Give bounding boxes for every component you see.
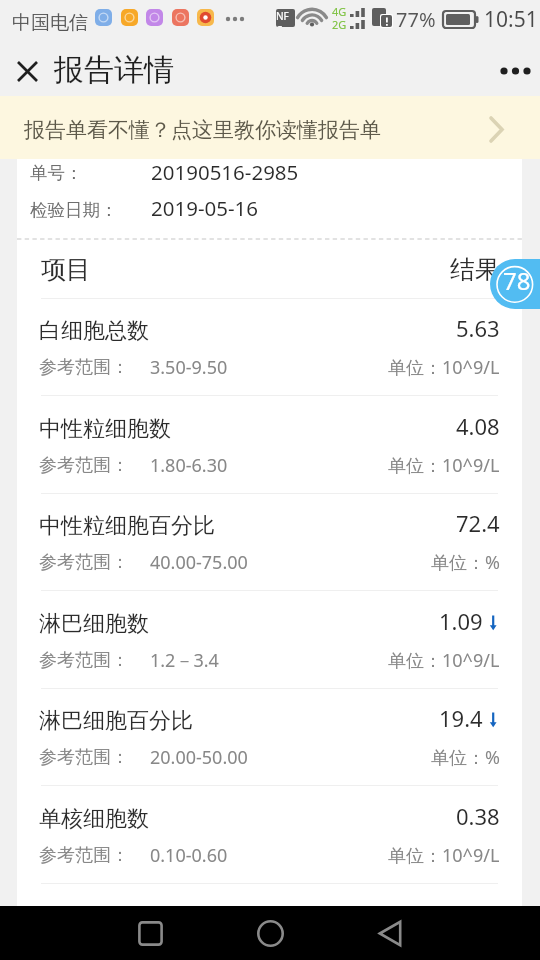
- button[interactable]: 报告单看不懂？点这里教你读懂报告单: [0, 96, 540, 159]
- staticText: 参考范围：: [39, 844, 129, 867]
- staticText: 单号：: [30, 162, 83, 184]
- staticText: 10:51: [484, 5, 538, 34]
- button[interactable]: Home: [230, 906, 310, 960]
- staticText: 2019-05-16: [151, 194, 259, 222]
- button[interactable]: 白细胞总数: [17, 298, 522, 396]
- staticText: 77%: [396, 6, 436, 33]
- staticText: 单核细胞数: [39, 805, 149, 833]
- staticText: 1.80-6.30: [150, 453, 228, 478]
- button[interactable]: 单核细胞百分比: [17, 884, 522, 960]
- staticText: 0.38: [456, 801, 500, 831]
- staticText: 2G: [332, 17, 347, 32]
- staticText: 单位：%: [431, 745, 500, 770]
- staticText: 单核细胞百分比: [39, 903, 193, 931]
- staticText: 参考范围：: [39, 356, 129, 379]
- button[interactable]: Close: [4, 48, 50, 94]
- staticText: 白细胞总数: [39, 317, 149, 345]
- staticText: 4.08: [456, 411, 500, 441]
- staticText: 参考范围：: [39, 746, 129, 769]
- staticText: 单位：10^9/L: [388, 843, 500, 868]
- staticText: 淋巴细胞数: [39, 610, 149, 638]
- staticText: 参考范围：: [39, 551, 129, 574]
- button[interactable]: Back: [350, 906, 430, 960]
- staticText: 项目: [41, 254, 91, 285]
- button[interactable]: 淋巴细胞数: [17, 591, 522, 689]
- staticText: 20190516-2985: [151, 158, 299, 186]
- staticText: 1.2－3.4: [150, 648, 219, 673]
- staticText: 4G: [332, 4, 347, 19]
- staticText: 报告单看不懂？点这里教你读懂报告单: [24, 117, 381, 143]
- button[interactable]: Health score 78: [490, 259, 540, 309]
- button[interactable]: 单核细胞数: [17, 786, 522, 884]
- staticText: 6.7: [468, 899, 500, 929]
- button[interactable]: More options: [492, 47, 540, 95]
- staticText: 中性粒细胞百分比: [39, 512, 215, 540]
- staticText: 淋巴细胞百分比: [39, 707, 193, 735]
- staticText: 结果: [450, 254, 500, 285]
- staticText: 单位：10^9/L: [388, 648, 500, 673]
- staticText: NFC: [276, 9, 295, 27]
- button[interactable]: Recent apps: [110, 906, 190, 960]
- staticText: 3.50-9.50: [150, 355, 228, 380]
- staticText: 单位：10^9/L: [388, 453, 500, 478]
- staticText: 3.00-10.00: [150, 941, 238, 960]
- staticText: 0.10-0.60: [150, 843, 228, 868]
- staticText: 参考范围：: [39, 649, 129, 672]
- staticText: 78: [503, 264, 531, 297]
- staticText: 1.09: [439, 606, 483, 636]
- staticText: 5.63: [456, 313, 500, 343]
- staticText: 检验日期：: [30, 199, 118, 221]
- staticText: 参考范围：: [39, 454, 129, 477]
- staticText: 报告详情: [54, 51, 174, 89]
- staticText: 20.00-50.00: [150, 745, 248, 770]
- staticText: 中性粒细胞数: [39, 415, 171, 443]
- staticText: 单位：10^9/L: [388, 355, 500, 380]
- staticText: 40.00-75.00: [150, 550, 248, 575]
- staticText: 单位：%: [431, 550, 500, 575]
- staticText: 中国电信: [12, 11, 88, 35]
- button[interactable]: 淋巴细胞百分比: [17, 688, 522, 786]
- staticText: 19.4: [439, 703, 483, 733]
- staticText: 72.4: [456, 508, 500, 538]
- button[interactable]: 中性粒细胞百分比: [17, 493, 522, 591]
- button[interactable]: 中性粒细胞数: [17, 396, 522, 494]
